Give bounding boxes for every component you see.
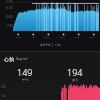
staticText: 8,000 <box>6 15 13 19</box>
staticText: 11:00 <box>29 35 36 38</box>
button[interactable]: Elevation chart <box>0 0 100 38</box>
staticText: 13:00 <box>43 35 50 38</box>
staticText: 149 <box>17 66 33 78</box>
staticText: 194 <box>67 66 83 78</box>
staticText: 7,900 <box>6 24 13 28</box>
staticText: 8,200 <box>6 0 13 3</box>
button[interactable]: 心拍 <box>0 52 100 100</box>
staticText: 150 <box>1 94 6 98</box>
staticText: 平均 <box>22 78 29 82</box>
staticText: (bpm) <box>16 56 28 62</box>
staticText: 高度 (m) | 心拍 <box>40 43 61 47</box>
staticText: 15:00 <box>58 35 65 38</box>
staticText: 8,100 <box>6 6 13 10</box>
staticText: 200 <box>1 85 6 89</box>
button[interactable]: 194 <box>50 66 100 82</box>
staticText: 19:00 <box>88 35 95 38</box>
button[interactable]: 149 <box>0 66 50 82</box>
staticText: 17:00 <box>73 35 80 38</box>
staticText: 心拍 <box>4 56 14 62</box>
staticText: 最大 <box>72 78 79 82</box>
staticText: 0:00 <box>16 35 21 38</box>
